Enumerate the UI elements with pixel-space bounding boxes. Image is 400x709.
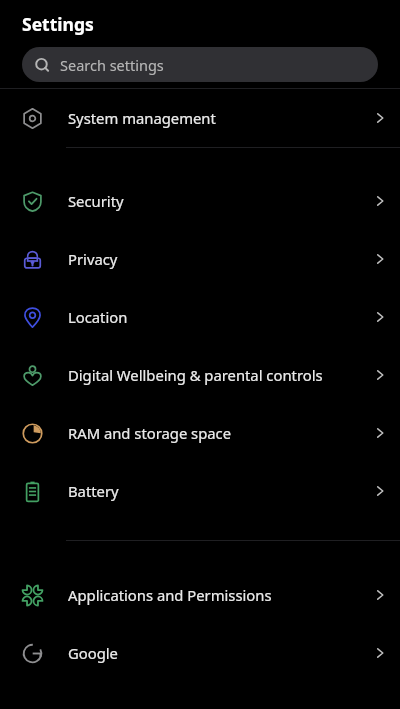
button[interactable]: Security [0,172,400,230]
button[interactable]: Google [0,624,400,682]
staticText: Settings [22,12,94,36]
staticText: Security [68,191,366,211]
staticText: Google [68,643,366,663]
staticText: Search settings [60,55,164,75]
staticText: RAM and storage space [68,423,366,443]
button[interactable]: Digital Wellbeing & parental controls [0,346,400,404]
staticText: Battery [68,481,366,501]
staticText: Applications and Permissions [68,585,366,605]
button[interactable]: Search settings [22,47,378,82]
button[interactable]: Privacy [0,230,400,288]
button[interactable]: Location [0,288,400,346]
staticText: Location [68,307,366,327]
staticText: Digital Wellbeing & parental controls [68,365,366,385]
button[interactable]: RAM and storage space [0,404,400,462]
button[interactable]: Applications and Permissions [0,566,400,624]
button[interactable]: Battery [0,462,400,520]
button[interactable]: System management [0,89,400,147]
staticText: Privacy [68,249,366,269]
staticText: System management [68,108,366,128]
